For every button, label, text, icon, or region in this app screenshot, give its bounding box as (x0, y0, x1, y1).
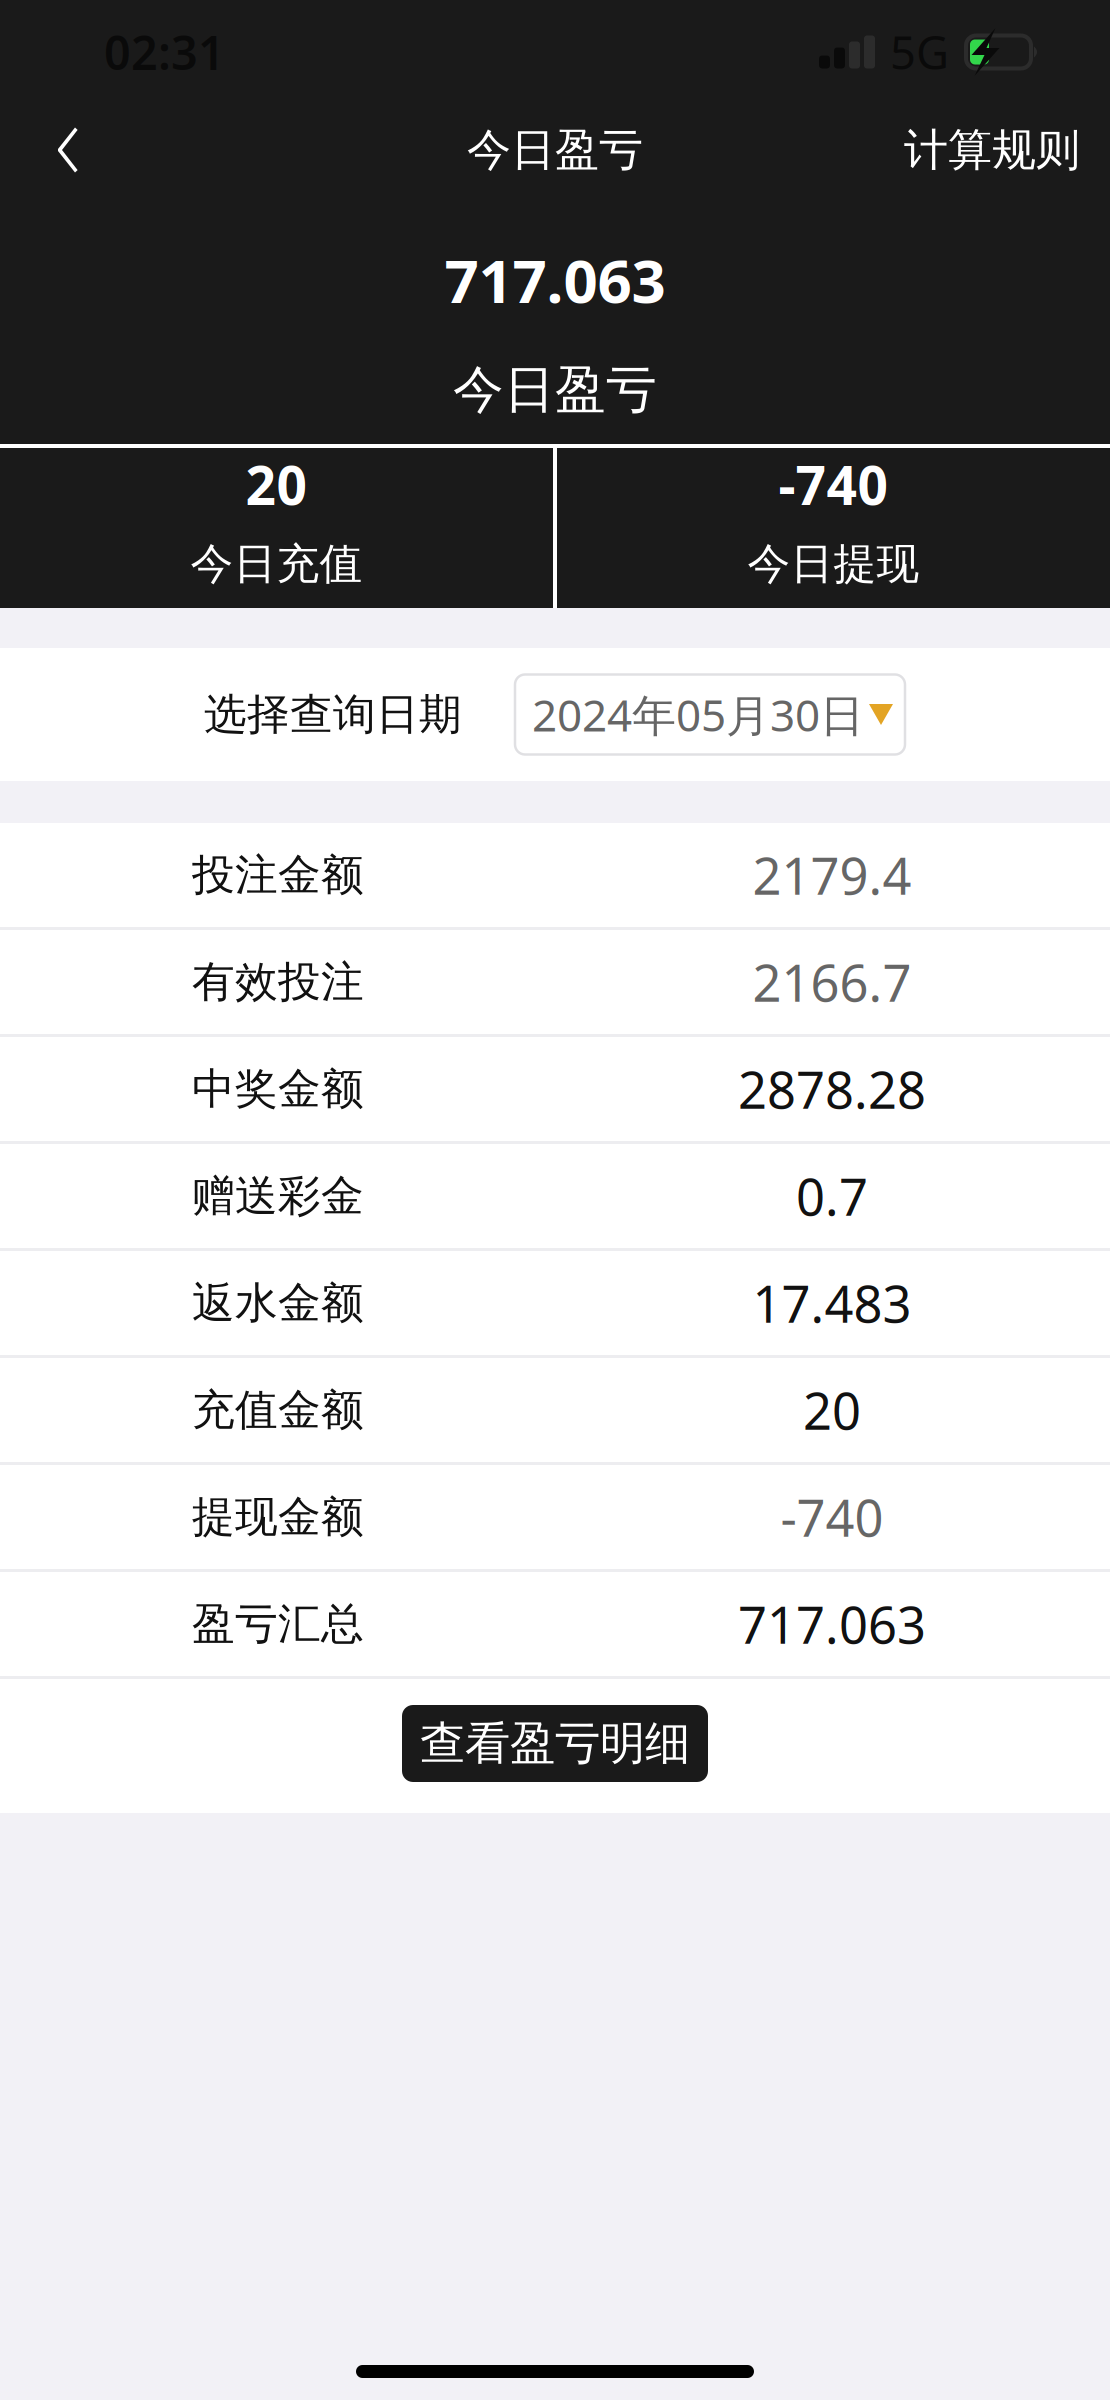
staticText: 今日盈亏 (467, 123, 643, 177)
staticText: 充值金额 (192, 1384, 364, 1436)
staticText: 今日充值 (190, 538, 362, 590)
staticText: 提现金额 (192, 1491, 364, 1543)
staticText: -740 (778, 449, 888, 520)
staticText: 计算规则 (904, 123, 1080, 177)
button[interactable]: 返回 (58, 104, 158, 196)
button[interactable]: 查看盈亏明细 (402, 1705, 708, 1782)
staticText: 717.063 (738, 1590, 926, 1658)
staticText: 17.483 (752, 1269, 911, 1337)
button[interactable]: 2024年05月30日 (515, 674, 905, 754)
staticText: 2024年05月30日 (532, 685, 864, 744)
staticText: 2166.7 (752, 948, 911, 1016)
staticText: 赠送彩金 (192, 1170, 364, 1222)
staticText: 0.7 (796, 1162, 868, 1230)
staticText: -740 (780, 1483, 883, 1551)
staticText: 717.063 (444, 240, 665, 320)
staticText: 选择查询日期 (204, 688, 462, 741)
staticText: 查看盈亏明细 (420, 1716, 690, 1771)
staticText: 中奖金额 (192, 1063, 364, 1115)
button[interactable]: 计算规则 (870, 99, 1080, 201)
staticText: 20 (803, 1376, 861, 1444)
staticText: 5G (890, 22, 949, 82)
staticText: 2179.4 (752, 841, 911, 909)
staticText: 2878.28 (738, 1055, 926, 1123)
staticText: 盈亏汇总 (192, 1598, 364, 1650)
staticText: 今日提现 (747, 538, 919, 590)
staticText: 投注金额 (192, 849, 364, 901)
staticText: 返水金额 (192, 1277, 364, 1329)
staticText: 有效投注 (192, 956, 364, 1008)
staticText: 今日盈亏 (453, 359, 657, 421)
staticText: 20 (245, 449, 307, 520)
staticText: 02:31 (104, 21, 225, 83)
